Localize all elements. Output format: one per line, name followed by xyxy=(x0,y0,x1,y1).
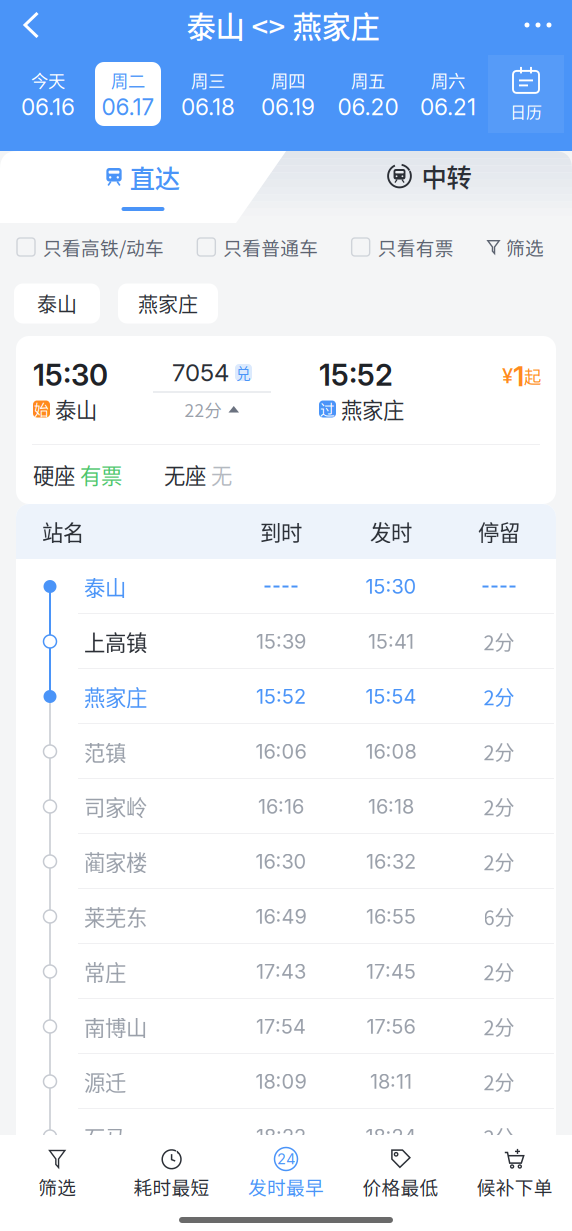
button[interactable]: 日历 xyxy=(488,55,564,133)
staticText: 耗时最短 xyxy=(134,1173,210,1200)
staticText: 2分 xyxy=(483,737,514,766)
staticText: 15:52 xyxy=(256,684,306,709)
staticText: 泰山 xyxy=(55,394,97,424)
staticText: 今天 xyxy=(31,67,65,93)
staticText: 17:43 xyxy=(256,959,306,984)
staticText: 06.17 xyxy=(101,93,154,121)
staticText: 17:54 xyxy=(256,1014,306,1039)
button[interactable]: 候补下单 xyxy=(458,1135,572,1217)
staticText: 上高镇 xyxy=(84,626,147,657)
staticText: 18:22 xyxy=(256,1124,306,1149)
staticText: 16:55 xyxy=(366,904,416,929)
staticText: 只看有票 xyxy=(378,233,454,260)
staticText: 停留 xyxy=(478,516,520,547)
staticText: 蔺家楼 xyxy=(84,846,147,877)
staticText: 源迁 xyxy=(84,1066,126,1097)
staticText: 06.19 xyxy=(261,93,315,121)
staticText: 有票 xyxy=(75,459,122,490)
staticText: 硬座 xyxy=(33,459,75,490)
staticText: 7054 xyxy=(172,358,229,387)
staticText: 1 xyxy=(513,359,524,393)
staticText: 18:24 xyxy=(365,1124,416,1149)
staticText: 06.16 xyxy=(21,93,75,121)
staticText: 南博山 xyxy=(84,1011,147,1042)
staticText: 候补下单 xyxy=(477,1173,553,1200)
staticText: 无 xyxy=(206,459,232,490)
staticText: 石马 xyxy=(84,1121,126,1152)
staticText: 18:09 xyxy=(255,1069,306,1094)
staticText: 泰山 xyxy=(37,289,77,318)
staticText: 无座 xyxy=(164,459,206,490)
button[interactable]: 耗时最短 xyxy=(114,1135,229,1217)
staticText: 2分 xyxy=(483,1012,514,1041)
staticText: 24 xyxy=(277,1150,295,1168)
staticText: 16:18 xyxy=(368,794,414,819)
staticText: 15:30 xyxy=(33,357,108,393)
button[interactable]: 24 xyxy=(229,1135,343,1217)
staticText: 莱芜东 xyxy=(84,901,147,932)
staticText: 只看高铁/动车 xyxy=(43,233,164,260)
staticText: 16:49 xyxy=(255,904,306,929)
staticText: 周四 xyxy=(271,67,305,93)
button[interactable]: 直达 xyxy=(0,151,286,223)
staticText: 2分 xyxy=(483,1122,514,1151)
button[interactable]: 筛选 xyxy=(487,227,544,267)
button[interactable]: 周六 xyxy=(408,48,488,140)
staticText: 发时 xyxy=(370,516,412,547)
staticText: 15:52 xyxy=(319,357,393,393)
staticText: 中转 xyxy=(421,158,471,194)
staticText: 06.20 xyxy=(337,93,398,121)
staticText: 16:08 xyxy=(365,739,416,764)
staticText: 兑 xyxy=(236,362,251,383)
button[interactable]: 周五 xyxy=(328,48,408,140)
staticText: 2分 xyxy=(483,957,514,986)
staticText: 发时最早 xyxy=(248,1173,324,1200)
staticText: 2分 xyxy=(483,1067,514,1096)
staticText: 泰山 <> 燕家庄 xyxy=(186,4,379,46)
staticText: 范镇 xyxy=(84,736,126,767)
button[interactable]: 今天 xyxy=(8,48,88,140)
button[interactable]: 泰山 xyxy=(14,283,100,323)
staticText: 06.18 xyxy=(181,93,235,121)
staticText: 周三 xyxy=(191,67,225,93)
staticText: 17:56 xyxy=(366,1014,415,1039)
staticText: 周五 xyxy=(351,67,385,93)
button[interactable]: 周二 xyxy=(88,48,168,140)
staticText: 15:30 xyxy=(365,574,416,599)
staticText: 司家岭 xyxy=(84,791,147,822)
staticText: 2分 xyxy=(483,682,514,711)
button[interactable]: 筛选 xyxy=(0,1135,114,1217)
button[interactable]: 周四 xyxy=(248,48,328,140)
staticText: 16:30 xyxy=(255,849,306,874)
staticText: 起 xyxy=(524,363,541,389)
staticText: 16:16 xyxy=(258,794,304,819)
staticText: 2分 xyxy=(483,627,514,656)
button[interactable]: 燕家庄 xyxy=(118,283,218,323)
staticText: 筛选 xyxy=(506,233,544,260)
staticText: 周二 xyxy=(111,67,145,93)
staticText: 15:54 xyxy=(365,684,416,709)
button[interactable]: 只看有票 xyxy=(352,227,454,267)
staticText: ¥ xyxy=(502,364,513,388)
button[interactable]: 只看高铁/动车 xyxy=(17,227,164,267)
staticText: 燕家庄 xyxy=(341,394,404,424)
button[interactable]: 中转 xyxy=(286,151,572,223)
staticText: 过 xyxy=(320,398,335,420)
button[interactable]: 价格最低 xyxy=(343,1135,458,1217)
staticText: 15:41 xyxy=(368,629,414,654)
staticText: 周六 xyxy=(431,67,465,93)
staticText: 到时 xyxy=(260,516,302,547)
staticText: 只看普通车 xyxy=(223,233,318,260)
staticText: 站名 xyxy=(42,516,84,547)
staticText: 燕家庄 xyxy=(138,289,198,318)
staticText: 价格最低 xyxy=(362,1173,438,1200)
staticText: 06.21 xyxy=(420,93,476,121)
staticText: 泰山 xyxy=(84,571,126,602)
staticText: 18:11 xyxy=(370,1069,412,1094)
button[interactable]: 只看普通车 xyxy=(197,227,318,267)
button[interactable]: More xyxy=(504,0,572,50)
button[interactable]: Back xyxy=(0,0,62,50)
staticText: 6分 xyxy=(483,902,514,931)
staticText: 16:32 xyxy=(366,849,416,874)
button[interactable]: 周三 xyxy=(168,48,248,140)
